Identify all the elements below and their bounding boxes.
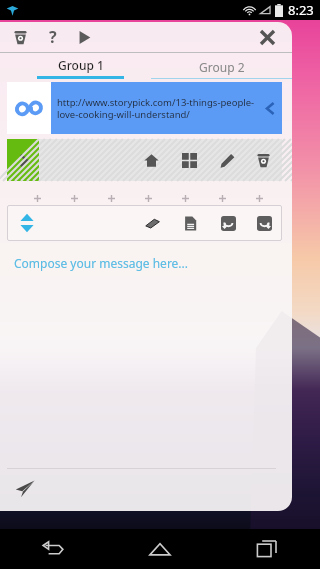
button[interactable]: Send — [10, 473, 40, 503]
button[interactable]: Reorder — [14, 210, 40, 236]
button[interactable]: Close — [252, 22, 282, 52]
button[interactable]: Back — [36, 532, 70, 566]
button[interactable]: Group 1 — [10, 53, 151, 79]
button[interactable]: Camera — [6, 23, 34, 51]
button[interactable]: Compose your message here... — [14, 255, 189, 271]
staticText: ? — [49, 26, 57, 48]
staticText: http://www.storypick.com/13-things-peopl… — [57, 96, 258, 121]
button[interactable]: Group 2 — [151, 53, 292, 79]
staticText: Group 1 — [58, 57, 104, 73]
button[interactable]: Erase — [141, 212, 163, 234]
staticText: Group 2 — [199, 59, 245, 75]
button[interactable]: Home — [143, 532, 177, 566]
button[interactable]: Play — [70, 23, 98, 51]
button[interactable]: Redo — [253, 212, 275, 234]
button[interactable]: Help — [40, 24, 66, 50]
button[interactable]: Document — [179, 212, 201, 234]
button[interactable]: Edit — [216, 149, 238, 171]
button[interactable]: Grid — [178, 149, 200, 171]
button[interactable]: http://www.storypick.com/13-things-peopl… — [7, 82, 282, 134]
button[interactable]: Undo — [217, 212, 239, 234]
staticText: 8:23 — [288, 1, 314, 19]
button[interactable]: Home — [140, 149, 162, 171]
button[interactable]: Recents — [250, 532, 284, 566]
button[interactable]: Camera — [252, 149, 274, 171]
button[interactable]: Expand — [7, 139, 39, 181]
